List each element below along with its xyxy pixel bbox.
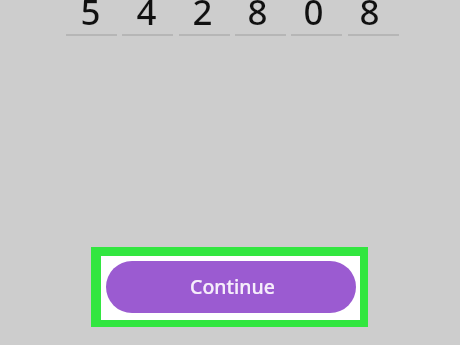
button[interactable]: Code digit 3: 2: [179, 0, 230, 36]
staticText: 4: [136, 0, 157, 30]
staticText: 8: [247, 0, 268, 30]
staticText: 0: [303, 0, 324, 30]
button[interactable]: Continue: [106, 261, 356, 313]
button[interactable]: Code digit 1: 5: [66, 0, 117, 36]
button[interactable]: Code digit 6: 8: [348, 0, 399, 36]
button[interactable]: Code digit 4: 8: [235, 0, 286, 36]
button[interactable]: Code digit 2: 4: [122, 0, 173, 36]
staticText: 5: [80, 0, 101, 30]
staticText: 2: [192, 0, 213, 30]
staticText: Continue: [190, 273, 275, 300]
staticText: 8: [359, 0, 380, 30]
button[interactable]: Code digit 5: 0: [291, 0, 342, 36]
